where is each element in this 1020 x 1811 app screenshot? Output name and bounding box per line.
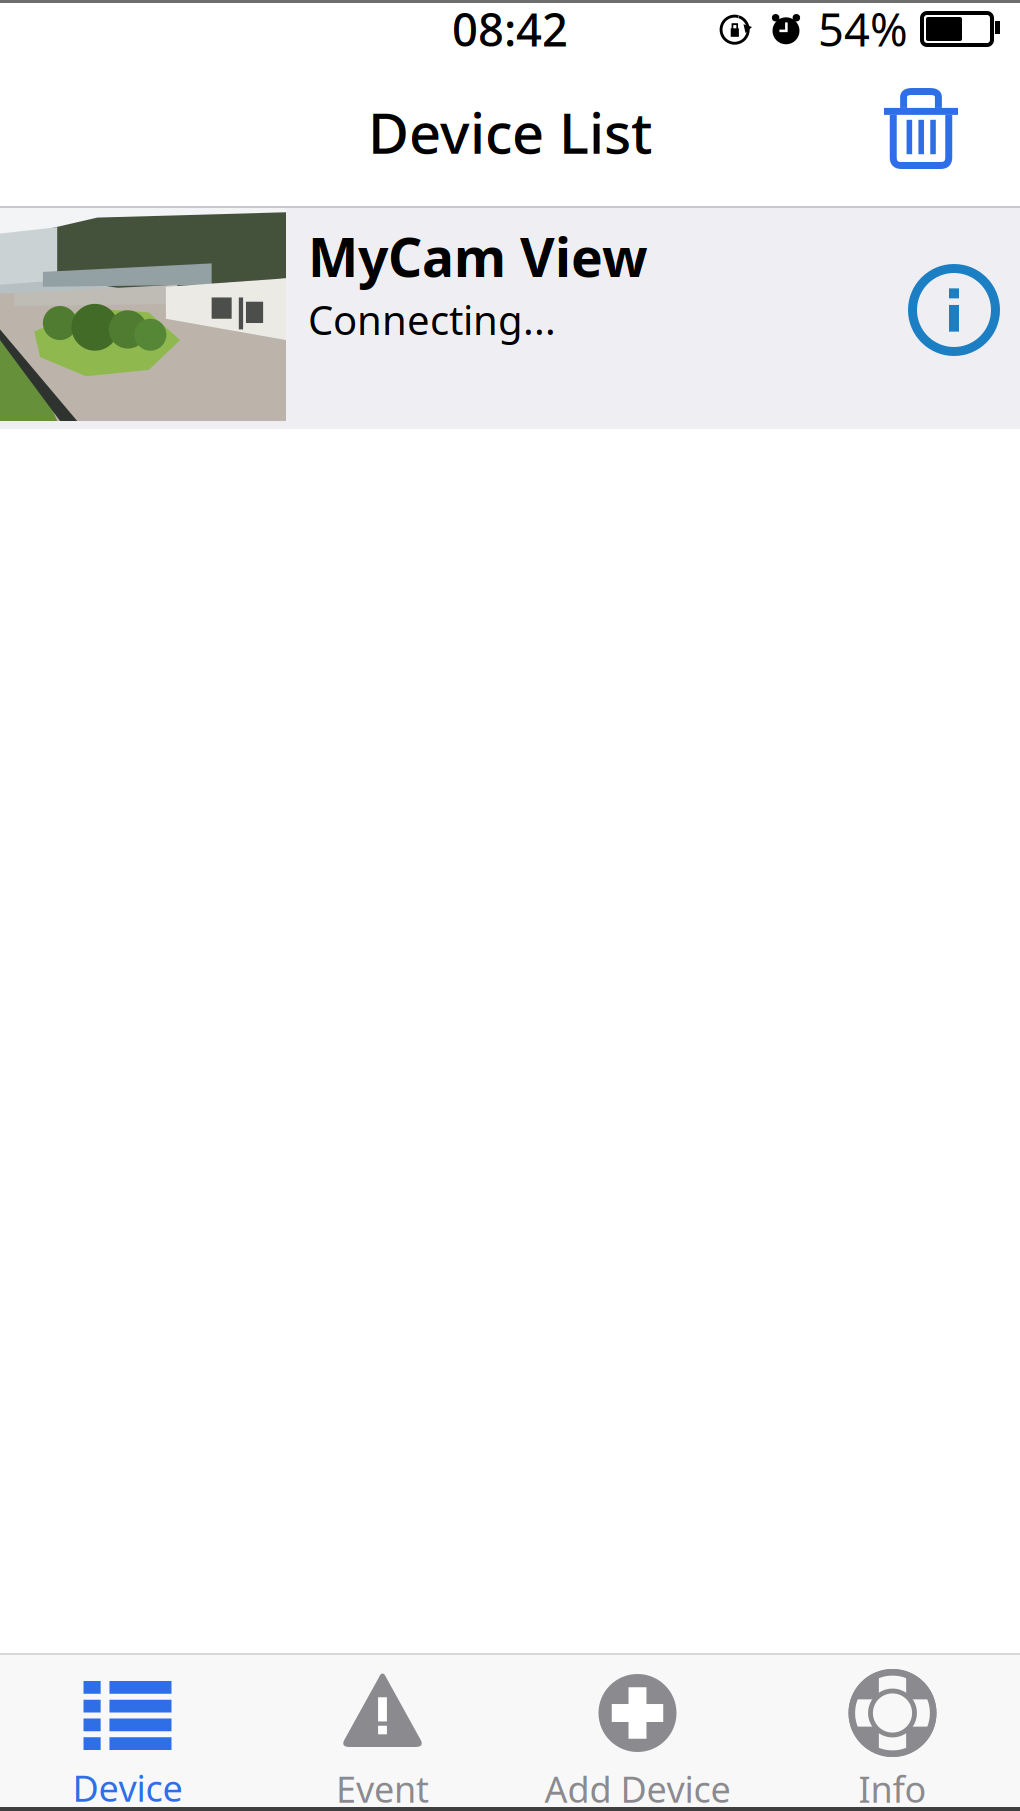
button[interactable]: Delete	[884, 87, 1020, 177]
staticText: Connecting...	[308, 293, 556, 346]
button[interactable]: Device	[0, 1655, 255, 1811]
staticText: Info	[858, 1765, 926, 1811]
button[interactable]: MyCam View	[0, 208, 1020, 429]
button[interactable]: Add Device	[510, 1655, 765, 1811]
staticText: MyCam View	[308, 221, 648, 292]
button[interactable]: Device info	[908, 208, 1020, 356]
staticText: Event	[336, 1765, 429, 1811]
staticText: Device List	[368, 95, 652, 169]
staticText: 08:42	[452, 0, 568, 59]
staticText: 54%	[818, 0, 908, 59]
staticText: Add Device	[544, 1765, 730, 1811]
button[interactable]: Info	[765, 1655, 1020, 1811]
button[interactable]: Event	[255, 1655, 510, 1811]
staticText: Device	[72, 1764, 182, 1811]
